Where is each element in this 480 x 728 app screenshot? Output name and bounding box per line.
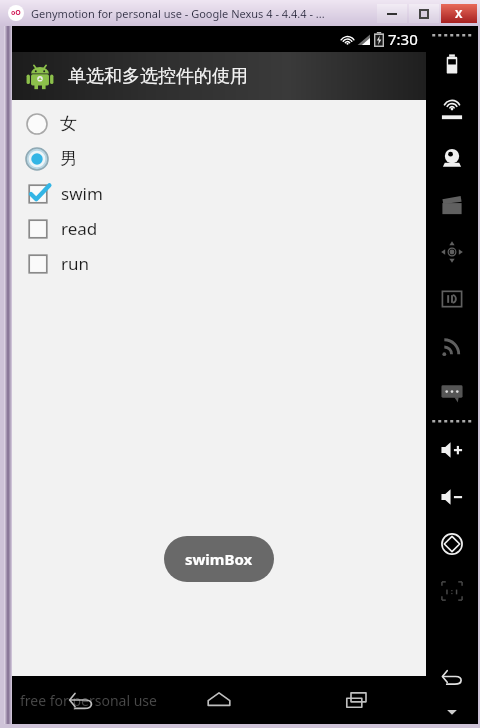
button[interactable]: One to one	[426, 567, 478, 614]
button[interactable]: Window button	[409, 4, 439, 23]
staticText: oO	[11, 8, 21, 18]
button[interactable]: 女	[12, 106, 426, 141]
button[interactable]: run	[12, 246, 426, 281]
staticText: 单选和多选控件的使用	[68, 65, 248, 88]
button[interactable]: Volume down	[426, 473, 478, 520]
staticText: free for personal use	[20, 691, 157, 710]
staticText: read	[61, 217, 98, 240]
button[interactable]: Back	[12, 676, 150, 724]
staticText: 7:30	[388, 29, 418, 49]
button[interactable]: Recents	[288, 676, 426, 724]
button[interactable]: Close	[441, 4, 477, 23]
staticText: swimBox	[185, 549, 253, 569]
button[interactable]: Volume up	[426, 426, 478, 473]
staticText: swim	[61, 182, 103, 205]
button[interactable]: Camera	[426, 134, 478, 181]
staticText: 女	[60, 113, 77, 134]
button[interactable]: Rotate	[426, 520, 478, 567]
button[interactable]: GPS	[426, 87, 478, 134]
staticText: 男	[60, 148, 77, 169]
staticText: Genymotion for personal use - Google Nex…	[31, 6, 325, 21]
button[interactable]: 男	[12, 141, 426, 176]
button[interactable]: read	[12, 211, 426, 246]
button[interactable]: Video	[426, 181, 478, 228]
button[interactable]: Window button	[377, 4, 407, 23]
button[interactable]: Network	[426, 322, 478, 369]
button[interactable]: Home	[150, 676, 288, 724]
button[interactable]: Back	[426, 653, 478, 700]
button[interactable]: Navigation	[426, 228, 478, 275]
button[interactable]: More	[426, 700, 478, 724]
button[interactable]: Identifiers	[426, 275, 478, 322]
button[interactable]: swim	[12, 176, 426, 211]
button[interactable]: swimBox	[164, 536, 274, 582]
staticText: X	[455, 6, 463, 21]
button[interactable]: SMS	[426, 369, 478, 416]
button[interactable]: Battery	[426, 40, 478, 87]
staticText: run	[61, 252, 90, 275]
